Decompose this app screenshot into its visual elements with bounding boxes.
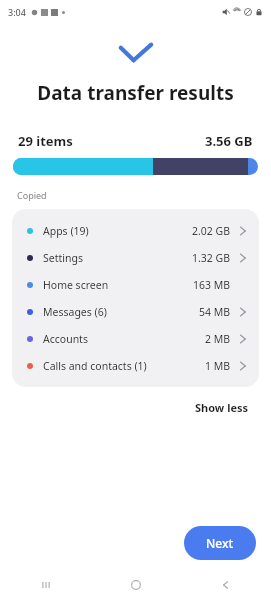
- staticText: Messages (6): [43, 305, 107, 319]
- button[interactable]: Settings: [12, 244, 259, 271]
- button[interactable]: Home: [91, 570, 181, 600]
- button[interactable]: Home screen: [12, 271, 259, 298]
- staticText: Home screen: [43, 278, 109, 292]
- button[interactable]: Calls and contacts (1): [12, 352, 259, 379]
- button[interactable]: Show less: [191, 397, 253, 418]
- button[interactable]: Back: [181, 570, 271, 600]
- button[interactable]: Accounts: [12, 325, 259, 352]
- staticText: 2.02 GB: [192, 224, 231, 238]
- staticText: Calls and contacts (1): [43, 359, 147, 373]
- staticText: 3:04: [8, 6, 26, 18]
- button[interactable]: Messages (6): [12, 298, 259, 325]
- staticText: Copied: [17, 189, 47, 201]
- staticText: 29 items: [18, 132, 73, 150]
- staticText: 1 MB: [205, 359, 231, 373]
- staticText: Data transfer results: [37, 80, 234, 106]
- staticText: Accounts: [43, 332, 88, 346]
- button[interactable]: Next: [184, 526, 256, 560]
- staticText: Apps (19): [43, 224, 89, 238]
- staticText: 163 MB: [193, 278, 231, 292]
- staticText: 2 MB: [205, 332, 231, 346]
- staticText: Next: [206, 535, 234, 551]
- staticText: 54 MB: [199, 305, 231, 319]
- button[interactable]: Apps (19): [12, 217, 259, 244]
- staticText: 3.56 GB: [205, 132, 253, 150]
- button[interactable]: Recent apps: [0, 570, 91, 600]
- staticText: Show less: [195, 400, 249, 415]
- staticText: Settings: [43, 251, 83, 265]
- staticText: 1.32 GB: [192, 251, 231, 265]
